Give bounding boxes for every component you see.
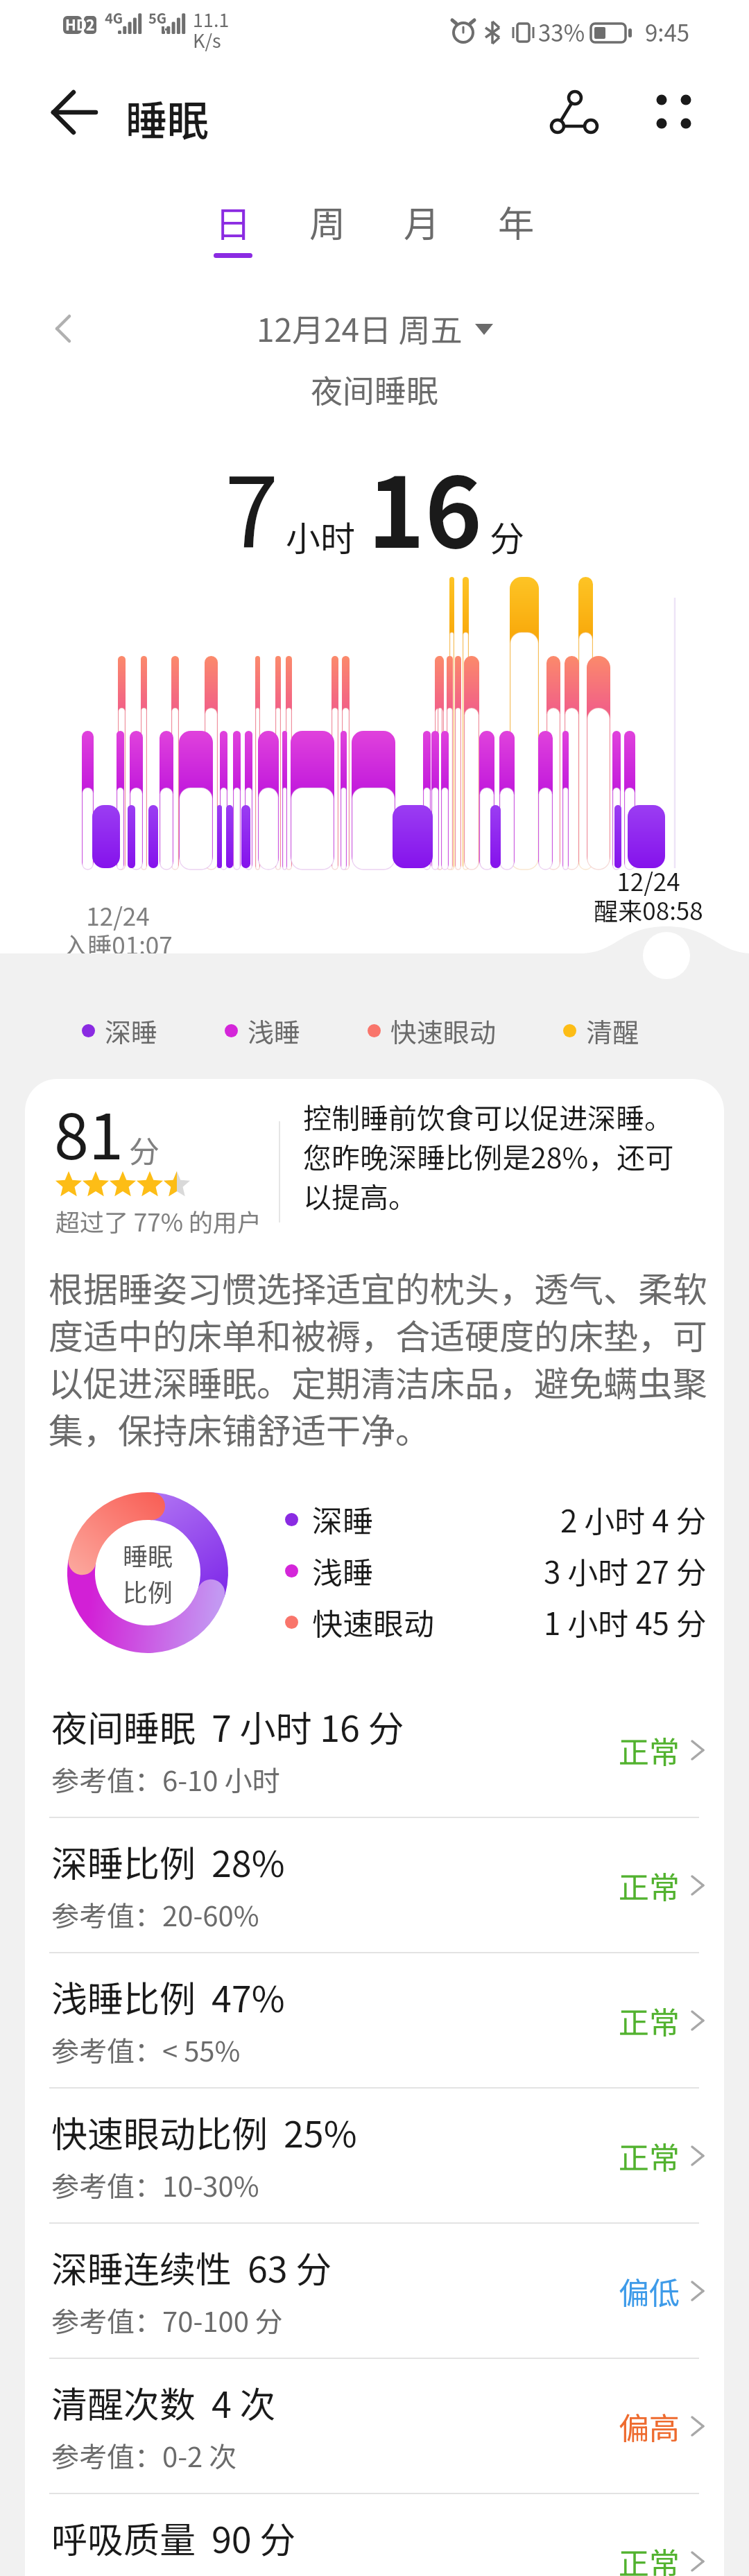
staticText: 根据睡姿习惯选择适宜的枕头，透气、柔软度适中的床单和被褥，合适硬度的床垫，可以促… — [49, 1262, 711, 1454]
staticText: 参考值：6-10 小时 — [51, 1759, 280, 1799]
staticText: 28% — [212, 1835, 285, 1887]
button[interactable]: Share — [538, 79, 610, 151]
staticText: 快速眼动 — [390, 1012, 497, 1050]
staticText: 睡眠 — [123, 1537, 173, 1573]
staticText: 夜间睡眠 — [311, 366, 438, 413]
staticText: 47% — [212, 1971, 285, 2023]
staticText: 1 小时 45 分 — [544, 1600, 707, 1644]
button[interactable]: 12月24日 周五 — [257, 305, 493, 352]
button[interactable]: Back — [40, 81, 107, 148]
button[interactable]: Previous day — [43, 306, 87, 351]
staticText: 2 小时 4 分 — [560, 1497, 707, 1541]
staticText: 快速眼动 — [312, 1600, 434, 1644]
button[interactable]: More options — [645, 79, 717, 151]
staticText: 63 分 — [248, 2241, 332, 2293]
staticText: HD — [65, 14, 87, 35]
staticText: 7 — [225, 435, 279, 576]
button[interactable]: 浅睡比例 — [25, 1952, 724, 2087]
staticText: 夜间睡眠 — [51, 1700, 196, 1752]
staticText: 控制睡前饮食可以促进深睡。您昨晚深睡比例是28%，还可以提高。 — [303, 1096, 681, 1216]
staticText: 7 小时 16 分 — [212, 1700, 404, 1752]
button[interactable]: 快速眼动比例 — [25, 2087, 724, 2222]
staticText: 偏高 — [619, 2404, 680, 2448]
button[interactable]: 周 — [280, 196, 374, 279]
button[interactable]: 深睡比例 — [25, 1817, 724, 1952]
button[interactable]: 深睡连续性 — [25, 2222, 724, 2358]
staticText: 比例 — [123, 1573, 173, 1609]
staticText: 12/24 醒来08:58 — [579, 863, 718, 927]
staticText: 81 — [54, 1087, 123, 1177]
staticText: 参考值：20-60% — [51, 1894, 259, 1935]
staticText: 超过了 77% 的用户 — [55, 1203, 261, 1238]
staticText: 分 — [129, 1127, 160, 1172]
staticText: 快速眼动比例 — [51, 2106, 268, 2158]
button[interactable]: 日 — [186, 196, 280, 279]
button[interactable]: 夜间睡眠 — [25, 1683, 724, 1817]
button[interactable]: 清醒次数 — [25, 2358, 724, 2493]
staticText: 5G — [148, 8, 167, 28]
staticText: 周 — [309, 196, 346, 248]
staticText: 正常 — [619, 2134, 680, 2178]
button[interactable]: 年 — [469, 196, 563, 279]
staticText: 正常 — [619, 1998, 680, 2043]
staticText: 参考值：< 55% — [51, 2030, 241, 2070]
staticText: 睡眠 — [126, 87, 209, 148]
staticText: 12/24 入睡01:07 — [49, 897, 187, 962]
staticText: 浅睡比例 — [51, 1971, 196, 2023]
staticText: 参考值：70-100 分 — [51, 2300, 283, 2340]
staticText: 2 — [86, 14, 95, 35]
staticText: 参考值：0-2 次 — [51, 2435, 237, 2475]
staticText: 16 — [368, 435, 483, 576]
staticText: 深睡 — [312, 1497, 373, 1541]
staticText: 月 — [404, 196, 440, 248]
staticText: 9:45 — [645, 15, 690, 49]
button[interactable]: 月 — [374, 196, 469, 279]
staticText: 4G — [105, 8, 123, 28]
staticText: 深睡连续性 — [51, 2241, 232, 2293]
staticText: 清醒 — [586, 1012, 639, 1050]
staticText: 25% — [284, 2106, 357, 2158]
staticText: 正常 — [619, 1863, 680, 1908]
staticText: 深睡比例 — [51, 1835, 196, 1887]
staticText: 11.1 K/s — [193, 6, 230, 53]
staticText: 分 — [490, 511, 524, 561]
staticText: 4 次 — [212, 2376, 276, 2428]
button[interactable]: 呼吸质量 — [25, 2493, 724, 2576]
staticText: 年 — [498, 196, 535, 248]
staticText: 参考值：10-30% — [51, 2165, 259, 2205]
staticText: 12月24日 周五 — [257, 305, 463, 352]
staticText: 3 小时 27 分 — [544, 1548, 707, 1593]
staticText: 正常 — [619, 1728, 680, 1772]
staticText: 33% — [538, 15, 585, 49]
staticText: 浅睡 — [312, 1548, 373, 1593]
staticText: 日 — [215, 196, 252, 248]
staticText: 正常 — [619, 2539, 680, 2576]
staticText: 呼吸质量 — [51, 2512, 196, 2564]
staticText: 清醒次数 — [51, 2376, 196, 2428]
staticText: 小时 — [286, 511, 355, 561]
staticText: 深睡 — [105, 1012, 158, 1050]
staticText: 90 分 — [212, 2512, 296, 2564]
staticText: 浅睡 — [248, 1012, 301, 1050]
staticText: 偏低 — [619, 2269, 680, 2313]
